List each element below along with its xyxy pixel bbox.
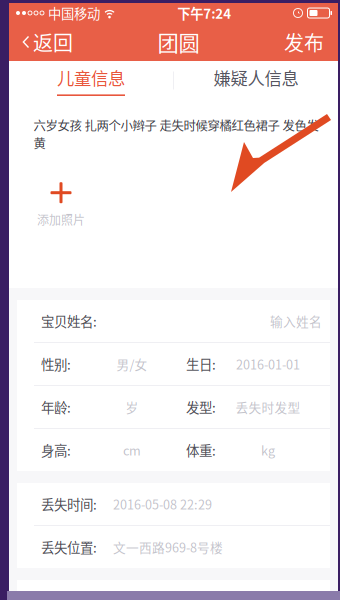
staticText: 身高: — [41, 440, 71, 460]
staticText: 发布 — [284, 27, 324, 56]
staticText: 六岁女孩 扎两个小辫子 走失时候穿橘红色裙子 发色发黄 — [33, 116, 318, 152]
staticText: 男/女 — [116, 355, 147, 373]
staticText: 文一西路969-8号楼 — [113, 538, 223, 556]
staticText: 中国移动 — [48, 3, 100, 23]
staticText: 宝贝姓名: — [41, 311, 97, 331]
staticText: 2016-05-08 22:29 — [113, 495, 212, 513]
staticText: 丢失位置: — [41, 537, 97, 557]
staticText: 输入姓名 — [270, 312, 322, 330]
button[interactable]: 添加照片 — [29, 180, 93, 230]
button[interactable]: 嫌疑人信息 — [174, 61, 338, 100]
staticText: 性别: — [41, 354, 71, 374]
staticText: cm — [123, 441, 141, 459]
staticText: 岁 — [125, 398, 138, 416]
staticText: 儿童信息 — [57, 65, 125, 90]
staticText: 团圆 — [157, 27, 199, 57]
button[interactable]: 返回 — [13, 23, 83, 61]
staticText: 嫌疑人信息 — [213, 65, 298, 90]
staticText: 年龄: — [41, 397, 71, 417]
staticText: kg — [261, 441, 275, 459]
staticText: 丢失时发型 — [235, 398, 300, 416]
staticText: 2016-01-01 — [236, 355, 300, 373]
staticText: 发型: — [186, 397, 216, 417]
staticText: 返回 — [33, 27, 73, 56]
button[interactable]: 发布 — [274, 23, 334, 61]
staticText: 体重: — [186, 440, 216, 460]
staticText: 添加照片 — [37, 211, 85, 228]
staticText: 下午7:24 — [177, 3, 231, 23]
button[interactable]: 儿童信息 — [9, 61, 173, 100]
staticText: 丢失时间: — [41, 494, 97, 514]
staticText: 生日: — [186, 354, 216, 374]
